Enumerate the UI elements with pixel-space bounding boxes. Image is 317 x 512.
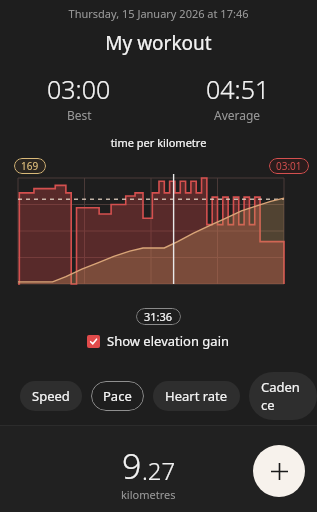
staticText: Cadence <box>261 378 305 414</box>
staticText: kilometres <box>121 487 176 502</box>
staticText: Pace <box>103 387 132 405</box>
button[interactable]: Show elevation gain <box>0 332 317 350</box>
staticText: 9 <box>122 443 142 489</box>
staticText: 169 <box>21 159 39 173</box>
button[interactable]: Speed <box>20 381 82 411</box>
staticText: Average <box>214 107 261 123</box>
button[interactable]: 04:51 <box>158 72 317 123</box>
staticText: Thursday, 15 January 2026 at 17:46 <box>0 6 317 21</box>
button[interactable]: Cadence <box>249 372 317 420</box>
button[interactable]: 03:00 <box>0 72 158 123</box>
button[interactable]: Heart rate <box>153 381 240 411</box>
staticText: time per kilometre <box>0 135 317 150</box>
staticText: Heart rate <box>165 387 228 405</box>
staticText: 03:01 <box>276 159 302 173</box>
staticText: Speed <box>32 387 70 405</box>
staticText: .27 <box>142 454 176 487</box>
staticText: 31:36 <box>144 309 173 324</box>
staticText: 04:51 <box>206 72 270 106</box>
staticText: Show elevation gain <box>107 332 230 350</box>
button[interactable]: Pace <box>91 381 144 411</box>
staticText: Best <box>67 107 92 123</box>
staticText: My workout <box>0 30 317 56</box>
button[interactable]: Add <box>253 445 305 497</box>
button[interactable]: 31:36 <box>144 309 173 324</box>
staticText: 03:00 <box>47 72 111 106</box>
